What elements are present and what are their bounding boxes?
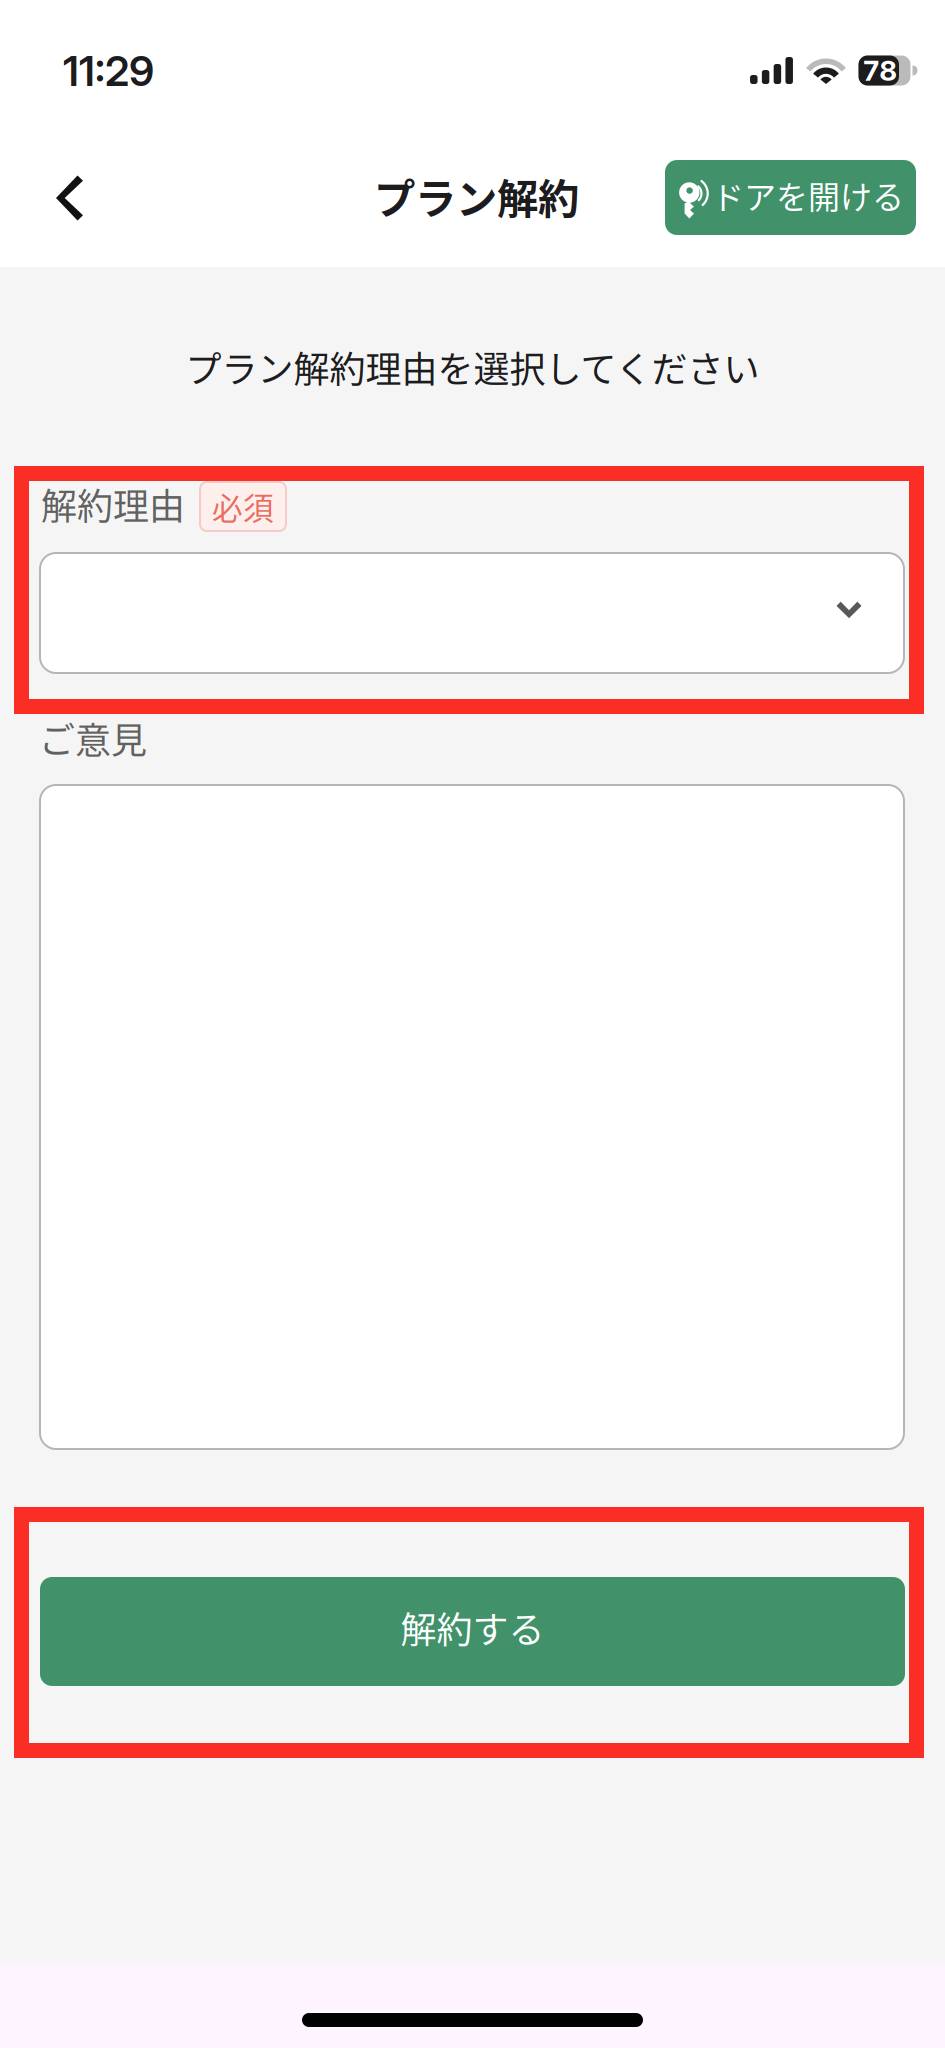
staticText: 解約理由 [41, 478, 185, 530]
button[interactable]: ご意見を入力 [40, 785, 904, 1449]
staticText: 78 [863, 54, 897, 87]
button[interactable]: 戻る [26, 153, 114, 243]
staticText: 必須 [212, 484, 274, 529]
button[interactable]: 解約する [40, 1577, 905, 1686]
button[interactable]: ドアを開ける [665, 160, 916, 235]
staticText: 解約する [400, 1601, 544, 1653]
staticText: ご意見 [39, 712, 147, 764]
staticText: 11:29 [63, 46, 154, 96]
staticText: プラン解約 [374, 166, 579, 226]
staticText: ドアを開ける [712, 172, 904, 218]
staticText: プラン解約理由を選択してください [185, 341, 759, 393]
button[interactable]: 解約理由を選択 [40, 553, 904, 673]
